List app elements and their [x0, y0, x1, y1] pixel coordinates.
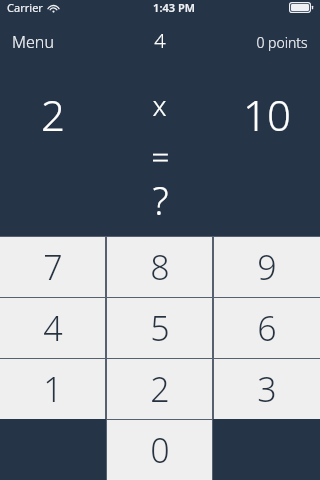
- staticText: =: [151, 134, 170, 178]
- button[interactable]: Menu: [0, 25, 66, 59]
- staticText: 6: [257, 305, 277, 351]
- button[interactable]: 3: [213, 358, 320, 419]
- staticText: 5: [150, 305, 170, 351]
- button[interactable]: 0: [106, 419, 213, 480]
- button[interactable]: 4: [0, 297, 106, 358]
- staticText: 10: [243, 86, 291, 143]
- other: Battery: [289, 2, 314, 13]
- staticText: 4: [43, 305, 63, 351]
- button[interactable]: 7: [0, 236, 106, 297]
- button[interactable]: 1: [0, 358, 106, 419]
- staticText: Menu: [12, 31, 54, 53]
- staticText: 4: [154, 27, 166, 54]
- staticText: 7: [43, 244, 63, 290]
- staticText: ?: [152, 174, 169, 226]
- staticText: x: [152, 86, 167, 124]
- button[interactable]: 8: [106, 236, 213, 297]
- button[interactable]: 9: [213, 236, 320, 297]
- button[interactable]: 2: [106, 358, 213, 419]
- button[interactable]: 6: [213, 297, 320, 358]
- other: Wi-Fi: [47, 3, 60, 13]
- staticText: 1:43 PM: [153, 0, 195, 15]
- staticText: 8: [150, 244, 170, 290]
- staticText: 2: [41, 86, 65, 143]
- staticText: 3: [257, 366, 277, 412]
- staticText: Carrier: [7, 0, 43, 15]
- staticText: 9: [257, 244, 277, 290]
- staticText: 0 points: [256, 33, 308, 52]
- staticText: 2: [150, 366, 170, 412]
- staticText: 0: [150, 427, 170, 473]
- button[interactable]: 5: [106, 297, 213, 358]
- staticText: 1: [43, 366, 63, 412]
